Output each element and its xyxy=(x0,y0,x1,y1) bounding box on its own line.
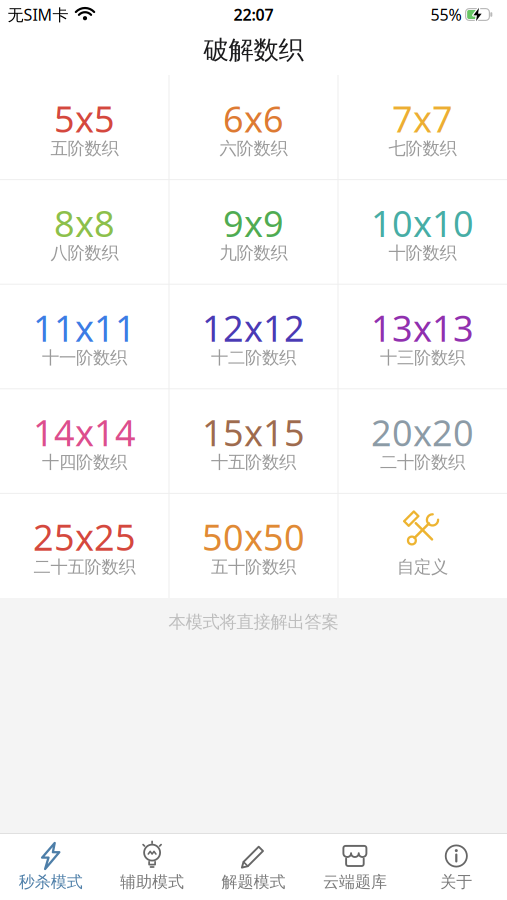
staticText: 五阶数织 xyxy=(50,138,118,159)
button[interactable]: 5x5 xyxy=(0,75,169,180)
button[interactable]: 解题模式 xyxy=(203,833,304,900)
staticText: 55% xyxy=(430,4,461,25)
staticText: 本模式将直接解出答案 xyxy=(168,611,338,633)
staticText: 九阶数织 xyxy=(219,242,287,264)
staticText: 20x20 xyxy=(371,408,474,456)
button[interactable]: 10x10 xyxy=(338,180,507,284)
staticText: 13x13 xyxy=(371,304,474,352)
staticText: 7x7 xyxy=(392,95,453,142)
staticText: 十二阶数织 xyxy=(211,347,296,368)
staticText: 八阶数织 xyxy=(50,242,118,264)
staticText: 十一阶数织 xyxy=(42,347,127,368)
staticText: 5x5 xyxy=(54,95,115,142)
staticText: 十四阶数织 xyxy=(42,452,127,473)
staticText: 8x8 xyxy=(54,199,115,247)
staticText: 关于 xyxy=(440,872,472,892)
button[interactable]: 关于 xyxy=(406,833,507,900)
staticText: 12x12 xyxy=(202,304,305,352)
button[interactable]: 6x6 xyxy=(169,75,338,180)
staticText: 二十阶数织 xyxy=(380,452,465,473)
staticText: 11x11 xyxy=(33,304,136,352)
staticText: 五十阶数织 xyxy=(211,556,296,578)
button[interactable]: 7x7 xyxy=(338,75,507,180)
staticText: 十三阶数织 xyxy=(380,347,465,368)
button[interactable]: 12x12 xyxy=(169,284,338,389)
button[interactable]: 11x11 xyxy=(0,284,169,389)
button[interactable]: 秒杀模式 xyxy=(0,833,101,900)
staticText: 9x9 xyxy=(223,199,284,247)
button[interactable]: 13x13 xyxy=(338,284,507,389)
button[interactable]: 20x20 xyxy=(338,389,507,493)
button[interactable]: 9x9 xyxy=(169,180,338,284)
staticText: 14x14 xyxy=(33,408,136,456)
staticText: 50x50 xyxy=(202,513,305,561)
button[interactable]: 云端题库 xyxy=(304,833,406,900)
button[interactable]: 15x15 xyxy=(169,389,338,493)
staticText: 解题模式 xyxy=(221,872,285,892)
staticText: 无SIM卡 xyxy=(7,4,68,25)
staticText: 辅助模式 xyxy=(120,872,184,892)
button[interactable]: 50x50 xyxy=(169,493,338,598)
staticText: 25x25 xyxy=(33,513,136,561)
staticText: 秒杀模式 xyxy=(19,872,83,892)
staticText: 破解数织 xyxy=(203,34,303,65)
staticText: 15x15 xyxy=(202,408,305,456)
staticText: 十阶数织 xyxy=(388,242,456,264)
button[interactable]: 辅助模式 xyxy=(101,833,203,900)
button[interactable]: 14x14 xyxy=(0,389,169,493)
button[interactable]: 8x8 xyxy=(0,180,169,284)
staticText: 自定义 xyxy=(397,556,448,578)
staticText: 二十五阶数织 xyxy=(33,556,135,578)
button[interactable]: 自定义 xyxy=(338,493,507,598)
staticText: 六阶数织 xyxy=(219,138,287,159)
staticText: 十五阶数织 xyxy=(211,452,296,473)
staticText: 6x6 xyxy=(223,95,284,142)
staticText: 22:07 xyxy=(233,4,273,25)
staticText: 10x10 xyxy=(371,199,474,247)
staticText: 七阶数织 xyxy=(388,138,456,159)
button[interactable]: 25x25 xyxy=(0,493,169,598)
staticText: 云端题库 xyxy=(323,872,387,892)
